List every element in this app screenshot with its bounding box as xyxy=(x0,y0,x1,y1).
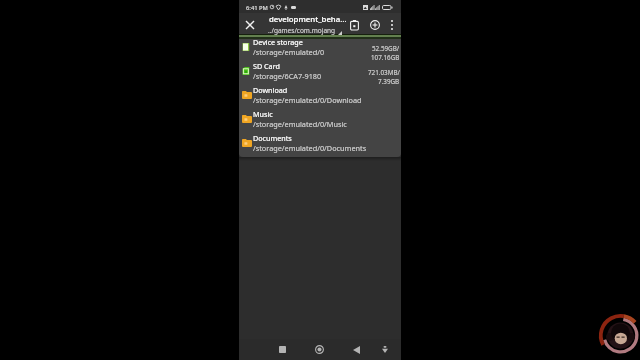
button[interactable]: Close xyxy=(242,13,258,36)
staticText: 6:41 PM xyxy=(246,4,268,12)
staticText: ../games/com.mojang xyxy=(268,26,336,35)
button[interactable]: Documents xyxy=(239,135,401,157)
staticText: 721.03MB/ xyxy=(368,68,400,77)
button[interactable]: Download xyxy=(239,87,401,111)
staticText: Documents xyxy=(253,133,292,143)
staticText: Download xyxy=(253,85,288,95)
staticText: /storage/6CA7-9180 xyxy=(253,71,322,81)
button[interactable]: Recents xyxy=(275,339,290,360)
staticText: Music xyxy=(253,109,273,119)
staticText: /storage/emulated/0 xyxy=(253,47,325,57)
button[interactable]: SD Card xyxy=(239,63,401,87)
button[interactable]: More options xyxy=(385,15,399,35)
staticText: 7.39GB xyxy=(378,77,400,86)
staticText: SD Card xyxy=(253,61,280,71)
button[interactable]: Device storage xyxy=(239,39,401,63)
staticText: /storage/emulated/0/Music xyxy=(253,119,347,129)
button[interactable]: Home xyxy=(312,339,327,360)
staticText: development_beha… xyxy=(269,14,347,25)
staticText: /storage/emulated/0/Download xyxy=(253,95,362,105)
button[interactable]: Music xyxy=(239,111,401,135)
button[interactable]: Back xyxy=(349,339,364,360)
staticText: 52.59GB/ xyxy=(372,44,400,53)
button[interactable]: Add xyxy=(365,15,384,35)
button[interactable]: Paste xyxy=(345,15,364,35)
staticText: Device storage xyxy=(253,39,303,47)
staticText: 107.16GB xyxy=(371,53,400,62)
button[interactable]: Hide keyboard xyxy=(377,339,392,360)
staticText: /storage/emulated/0/Documents xyxy=(253,143,367,153)
